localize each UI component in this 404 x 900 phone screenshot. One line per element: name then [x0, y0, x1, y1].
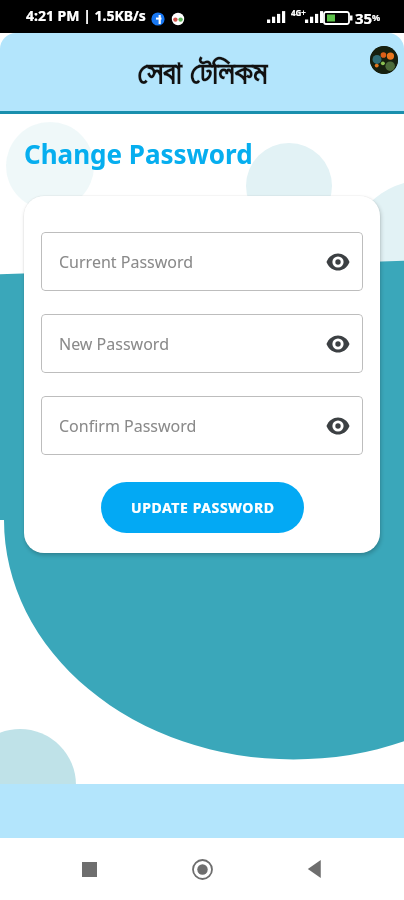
- staticText: 35: [355, 8, 373, 28]
- button[interactable]: Toggle password visibility: [324, 330, 352, 358]
- staticText: Current Password: [59, 251, 194, 273]
- staticText: সেবা টেলিকম: [137, 50, 267, 94]
- button[interactable]: Toggle password visibility: [324, 248, 352, 276]
- button[interactable]: Back: [291, 845, 339, 893]
- staticText: 4:21 PM | 1.5KB/s: [26, 6, 146, 25]
- button[interactable]: Confirm Password: [41, 396, 363, 455]
- button[interactable]: Toggle password visibility: [324, 412, 352, 440]
- button[interactable]: New Password: [41, 314, 363, 373]
- staticText: Change Password: [24, 136, 253, 171]
- staticText: New Password: [59, 333, 169, 355]
- button[interactable]: UPDATE PASSWORD: [101, 482, 304, 533]
- staticText: 4G+: [291, 7, 306, 18]
- button[interactable]: Home: [178, 845, 226, 893]
- button[interactable]: Current Password: [41, 232, 363, 291]
- staticText: Confirm Password: [59, 415, 197, 437]
- staticText: UPDATE PASSWORD: [131, 498, 275, 517]
- button[interactable]: Recents: [65, 845, 113, 893]
- button[interactable]: Profile: [370, 46, 398, 74]
- staticText: %: [372, 11, 381, 23]
